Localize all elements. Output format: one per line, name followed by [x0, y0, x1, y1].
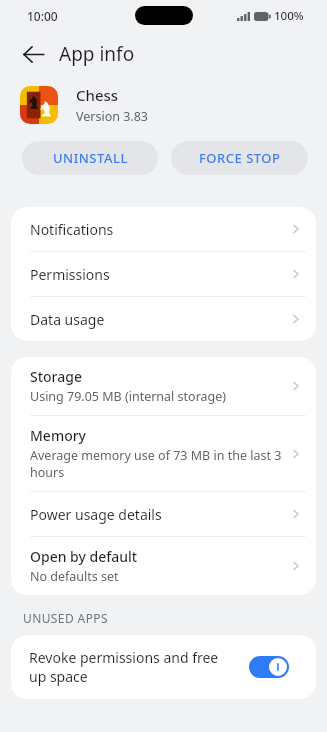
staticText: Power usage details: [30, 505, 289, 524]
staticText: Storage: [30, 367, 82, 386]
staticText: Permissions: [30, 265, 289, 284]
staticText: Revoke permissions and free up space: [29, 648, 239, 686]
staticText: UNUSED APPS: [23, 610, 108, 626]
staticText: Data usage: [30, 310, 289, 329]
staticText: Average memory use of 73 MB in the last …: [30, 447, 283, 481]
button[interactable]: Open by default: [11, 537, 316, 595]
button[interactable]: Power usage details: [11, 492, 316, 536]
button[interactable]: FORCE STOP: [171, 141, 308, 175]
button[interactable]: Memory: [11, 416, 316, 491]
button[interactable]: Permissions: [11, 252, 316, 296]
staticText: No defaults set: [30, 568, 119, 585]
button[interactable]: Notifications: [11, 207, 316, 251]
staticText: Memory: [30, 426, 87, 445]
staticText: App info: [59, 41, 135, 67]
button[interactable]: Storage: [11, 357, 316, 415]
staticText: Using 79.05 MB (internal storage): [30, 388, 227, 405]
staticText: Version 3.83: [76, 108, 149, 125]
staticText: Chess: [76, 85, 119, 105]
staticText: Open by default: [30, 547, 138, 566]
button[interactable]: Data usage: [11, 297, 316, 341]
staticText: FORCE STOP: [199, 149, 281, 167]
staticText: 100%: [274, 8, 304, 24]
staticText: UNINSTALL: [53, 149, 128, 167]
button[interactable]: UNINSTALL: [22, 141, 158, 175]
button[interactable]: Revoke permissions and free up space: [11, 635, 316, 699]
staticText: 10:00: [27, 8, 58, 24]
button[interactable]: Back: [16, 37, 50, 71]
staticText: Notifications: [30, 220, 289, 239]
